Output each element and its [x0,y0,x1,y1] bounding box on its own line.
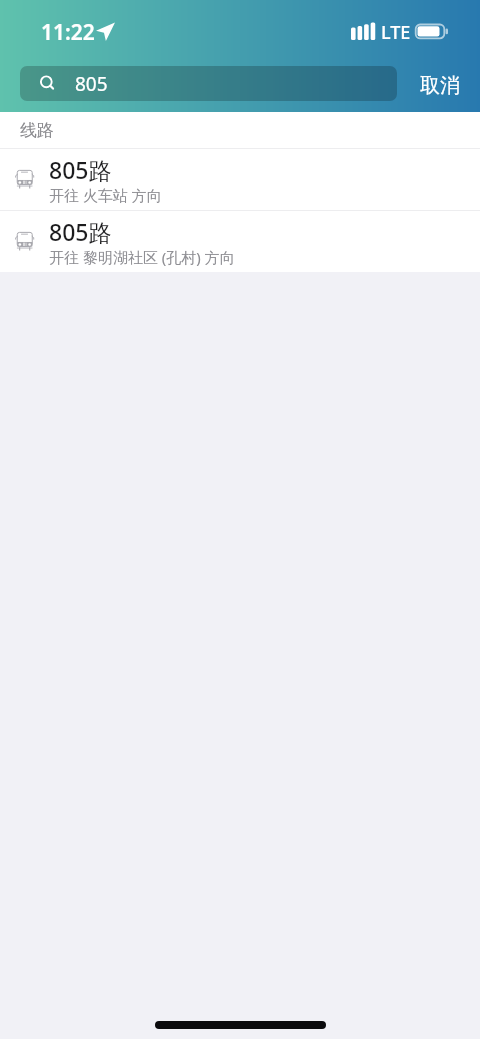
button[interactable]: 取消 [420,73,460,98]
staticText: 805路 [49,216,112,247]
staticText: 开往 黎明湖社区 (孔村) 方向 [49,247,235,267]
staticText: 805 [75,71,108,97]
button[interactable]: Bus route [0,149,480,210]
staticText: 805路 [49,154,112,185]
staticText: 开往 火车站 方向 [49,185,162,205]
other: Search [39,75,57,93]
other: Bus route [15,232,34,251]
staticText: 线路 [20,120,54,141]
other: Bus route [15,170,34,189]
staticText: 11:22 [41,18,95,47]
staticText: LTE [381,20,411,45]
button[interactable]: Bus route [0,211,480,272]
staticText: 取消 [420,73,460,98]
button[interactable]: Search [20,66,397,101]
